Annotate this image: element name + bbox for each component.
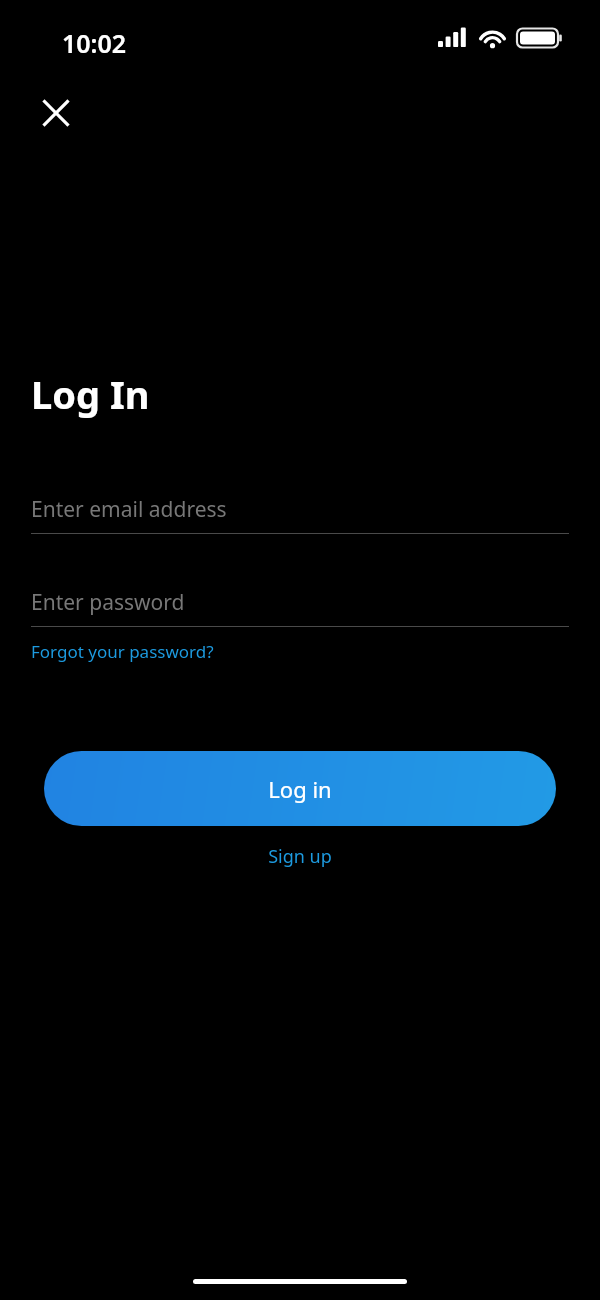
button[interactable]: Sign up (258, 840, 342, 873)
staticText: Enter email address (31, 495, 227, 524)
staticText: Forgot your password? (31, 640, 214, 663)
button[interactable]: Close (30, 87, 82, 139)
button[interactable]: Forgot your password? (31, 638, 214, 665)
button[interactable]: Enter password (31, 578, 569, 626)
staticText: Enter password (31, 588, 185, 617)
staticText: 10:02 (62, 26, 127, 60)
button[interactable]: Log in (44, 751, 556, 826)
button[interactable]: Enter email address (31, 485, 569, 533)
staticText: Sign up (268, 844, 332, 869)
staticText: Log In (31, 368, 150, 420)
staticText: Log in (268, 774, 332, 804)
